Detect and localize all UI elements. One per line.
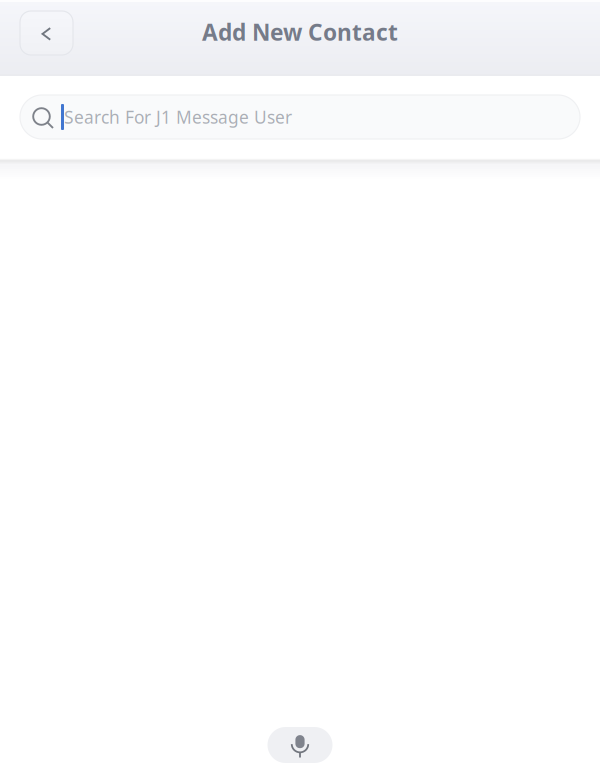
staticText: Search For J1 Message User — [64, 105, 292, 128]
button[interactable]: Dictate — [267, 727, 332, 763]
staticText: Add New Contact — [202, 17, 398, 47]
button[interactable]: Search For J1 Message User — [0, 95, 600, 139]
button[interactable]: Back — [20, 11, 73, 55]
